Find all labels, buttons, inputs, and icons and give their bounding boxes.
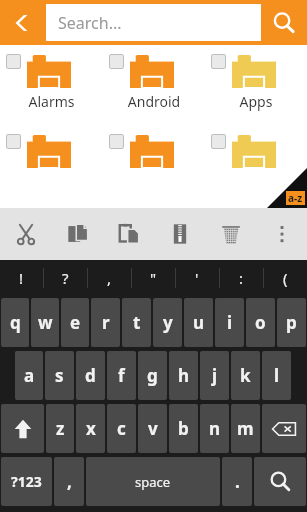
staticText: i [227,311,233,334]
button[interactable]: k [231,351,260,400]
button[interactable]: : [219,260,263,296]
staticText: z [56,417,65,440]
button[interactable]: ! [0,260,43,296]
staticText: j [212,364,218,387]
button[interactable]: Select [6,134,21,149]
button[interactable]: Select [211,54,226,69]
staticText: : [239,268,244,288]
button[interactable]: x [76,404,105,453]
staticText: y [163,311,173,334]
button[interactable]: m [231,404,260,453]
button[interactable]: f [107,351,136,400]
button[interactable]: Select [103,125,205,205]
button[interactable]: ?123 [1,457,52,506]
staticText: f [118,364,125,387]
staticText: , [67,470,72,493]
button[interactable]: ' [175,260,219,296]
staticText: h [178,364,190,387]
button[interactable]: Search [261,0,307,45]
staticText: t [133,311,141,334]
button[interactable]: e [61,298,89,347]
button[interactable]: Select [6,54,21,69]
staticText: ' [195,268,199,288]
staticText: r [102,311,110,334]
button[interactable]: Select [103,45,205,125]
button[interactable]: Backspace [262,404,306,453]
staticText: . [235,470,240,493]
button[interactable]: Search... [46,4,261,41]
button[interactable]: Select [109,134,124,149]
staticText: , [107,268,112,288]
staticText: x [86,417,96,440]
button[interactable]: Shift [1,404,44,453]
staticText: ! [19,268,24,288]
button[interactable]: w [31,298,59,347]
staticText: ( [283,268,288,288]
staticText: a-z [288,191,303,205]
button[interactable]: Copy [52,208,103,260]
staticText: o [255,311,266,334]
button[interactable]: " [131,260,175,296]
button[interactable]: b [169,404,198,453]
button[interactable]: Sort a-z [267,168,307,208]
staticText: w [38,311,53,334]
button[interactable]: c [107,404,136,453]
button[interactable]: r [91,298,120,347]
button[interactable]: j [200,351,229,400]
staticText: m [237,417,254,440]
staticText: Android [103,92,205,111]
staticText: ? [62,268,69,288]
button[interactable]: g [138,351,167,400]
staticText: d [85,364,96,387]
staticText: g [147,364,158,387]
button[interactable]: d [76,351,105,400]
button[interactable]: h [169,351,198,400]
staticText: c [117,417,126,440]
button[interactable]: Select [205,45,307,125]
button[interactable]: s [45,351,74,400]
staticText: Apps [205,92,307,111]
button[interactable]: Search [254,457,306,506]
button[interactable]: Select [0,125,103,205]
button[interactable]: q [1,298,29,347]
button[interactable]: y [153,298,182,347]
button[interactable]: z [46,404,74,453]
button[interactable]: t [122,298,151,347]
button[interactable]: n [200,404,229,453]
button[interactable]: . [222,457,252,506]
button[interactable]: More options [256,208,307,260]
staticText: Search... [58,12,122,34]
staticText: e [70,311,81,334]
staticText: Alarms [0,92,103,111]
staticText: b [178,417,189,440]
button[interactable]: l [262,351,291,400]
staticText: q [10,311,21,334]
button[interactable]: , [54,457,84,506]
button[interactable]: i [215,298,244,347]
staticText: ?123 [11,472,42,491]
button[interactable]: , [87,260,131,296]
button[interactable]: Zip [154,208,205,260]
button[interactable]: Back [0,0,46,45]
button[interactable]: p [277,298,306,347]
button[interactable]: a [15,351,43,400]
button[interactable]: u [184,298,213,347]
staticText: space [135,473,171,491]
button[interactable]: Select [211,134,226,149]
button[interactable]: Select [109,54,124,69]
button[interactable]: Select [0,45,103,125]
staticText: p [286,311,297,334]
button[interactable]: ? [43,260,87,296]
button[interactable]: space [86,457,220,506]
button[interactable]: v [138,404,167,453]
staticText: l [274,364,280,387]
button[interactable]: Paste [103,208,154,260]
button[interactable]: Select [205,125,307,205]
staticText: u [193,311,205,334]
button[interactable]: Delete [205,208,256,260]
staticText: " [150,268,157,288]
staticText: k [240,364,251,387]
button[interactable]: ( [263,260,307,296]
button[interactable]: Cut [0,208,52,260]
button[interactable]: o [246,298,275,347]
